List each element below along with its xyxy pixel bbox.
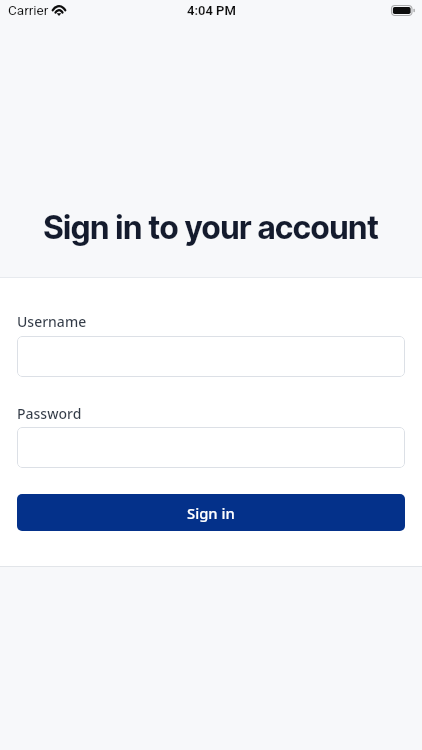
staticText: Username [17,312,87,331]
staticText: Sign in [187,503,235,523]
button[interactable]: Username input [17,336,405,377]
other: Wi-Fi [49,3,69,17]
staticText: Password [17,404,82,423]
staticText: Sign in to your account [0,208,422,247]
staticText: Carrier [8,2,49,18]
other: Battery full [391,5,416,16]
button[interactable]: Sign in [17,494,405,531]
button[interactable]: Password input [17,427,405,468]
staticText: 4:04 PM [187,3,236,18]
